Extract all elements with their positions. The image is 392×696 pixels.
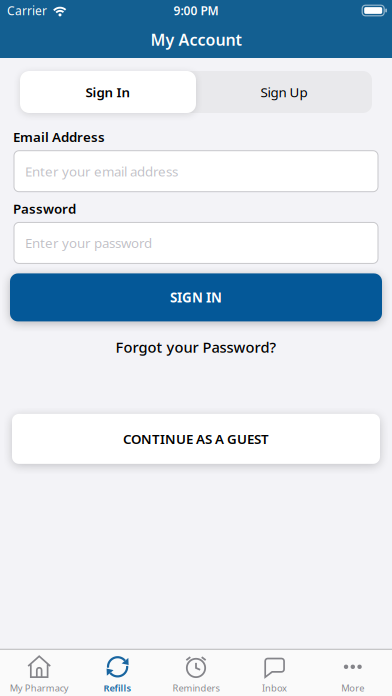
staticText: Sign Up xyxy=(260,83,307,101)
staticText: 9:00 PM xyxy=(173,2,218,18)
button[interactable]: Refills xyxy=(78,654,157,694)
button[interactable]: CONTINUE AS A GUEST xyxy=(0,414,392,464)
button[interactable]: Sign Up xyxy=(196,71,372,113)
button[interactable]: Sign In xyxy=(20,71,196,113)
staticText: Carrier xyxy=(7,2,47,18)
button[interactable]: SIGN IN xyxy=(0,273,392,321)
button[interactable]: Inbox xyxy=(235,654,314,694)
staticText: Sign In xyxy=(85,83,130,101)
staticText: Forgot your Password? xyxy=(115,337,276,357)
staticText: Email Address xyxy=(13,128,105,146)
staticText: Inbox xyxy=(262,682,287,694)
staticText: My Account xyxy=(150,29,241,50)
staticText: CONTINUE AS A GUEST xyxy=(123,430,269,448)
staticText: My Pharmacy xyxy=(10,682,69,694)
staticText: Password xyxy=(13,200,76,217)
staticText: Enter your email address xyxy=(25,162,178,180)
button[interactable]: Reminders xyxy=(157,654,235,694)
button[interactable]: More xyxy=(314,654,392,694)
staticText: Refills xyxy=(104,682,132,694)
button[interactable]: Forgot your Password? xyxy=(0,337,392,357)
button[interactable]: My Pharmacy xyxy=(0,654,78,694)
staticText: More xyxy=(341,682,364,694)
staticText: Enter your password xyxy=(25,234,152,252)
staticText: SIGN IN xyxy=(170,289,222,306)
button[interactable]: Enter your password xyxy=(14,222,378,263)
staticText: Reminders xyxy=(172,682,219,694)
button[interactable]: Enter your email address xyxy=(14,151,378,192)
